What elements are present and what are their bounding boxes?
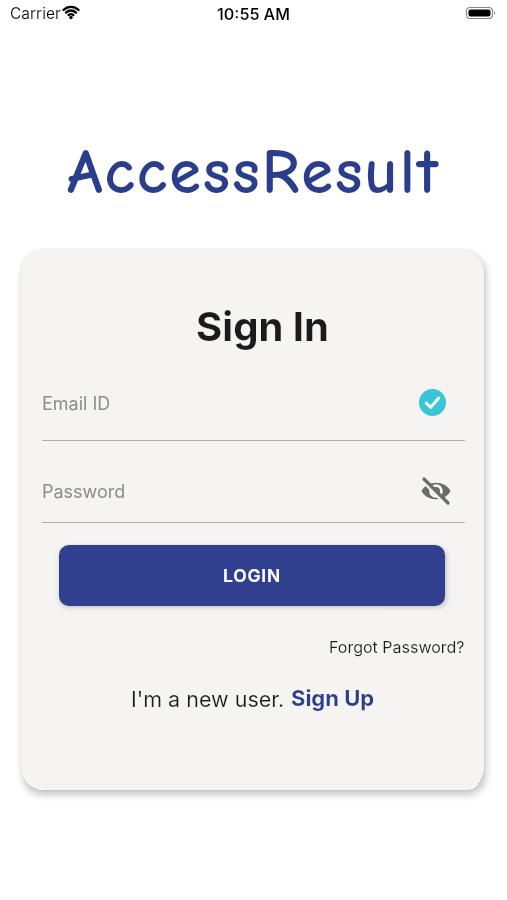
staticText: Password <box>42 481 126 503</box>
staticText: Carrier <box>10 4 61 23</box>
button[interactable]: LOGIN <box>59 545 445 606</box>
button[interactable]: Email ID <box>42 378 465 440</box>
staticText: AccessResult <box>0 135 507 209</box>
staticText: Sign In <box>31 302 484 350</box>
staticText: Email ID <box>42 393 111 415</box>
staticText: I'm a new user. <box>131 686 291 712</box>
button[interactable]: Forgot Password? <box>329 637 465 656</box>
staticText: LOGIN <box>223 565 282 586</box>
button[interactable]: Sign Up <box>291 685 375 712</box>
button[interactable]: Password <box>42 466 465 522</box>
staticText: 10:55 AM <box>0 4 507 23</box>
